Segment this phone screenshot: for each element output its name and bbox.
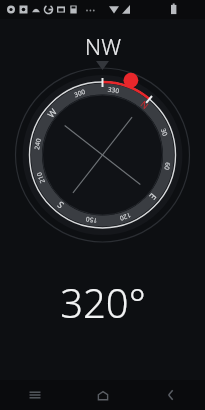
button[interactable]: Recent apps: [0, 380, 69, 410]
button[interactable]: Home: [69, 380, 137, 410]
staticText: NW: [85, 31, 121, 61]
button[interactable]: Back: [137, 380, 205, 410]
staticText: 320°: [60, 275, 146, 329]
